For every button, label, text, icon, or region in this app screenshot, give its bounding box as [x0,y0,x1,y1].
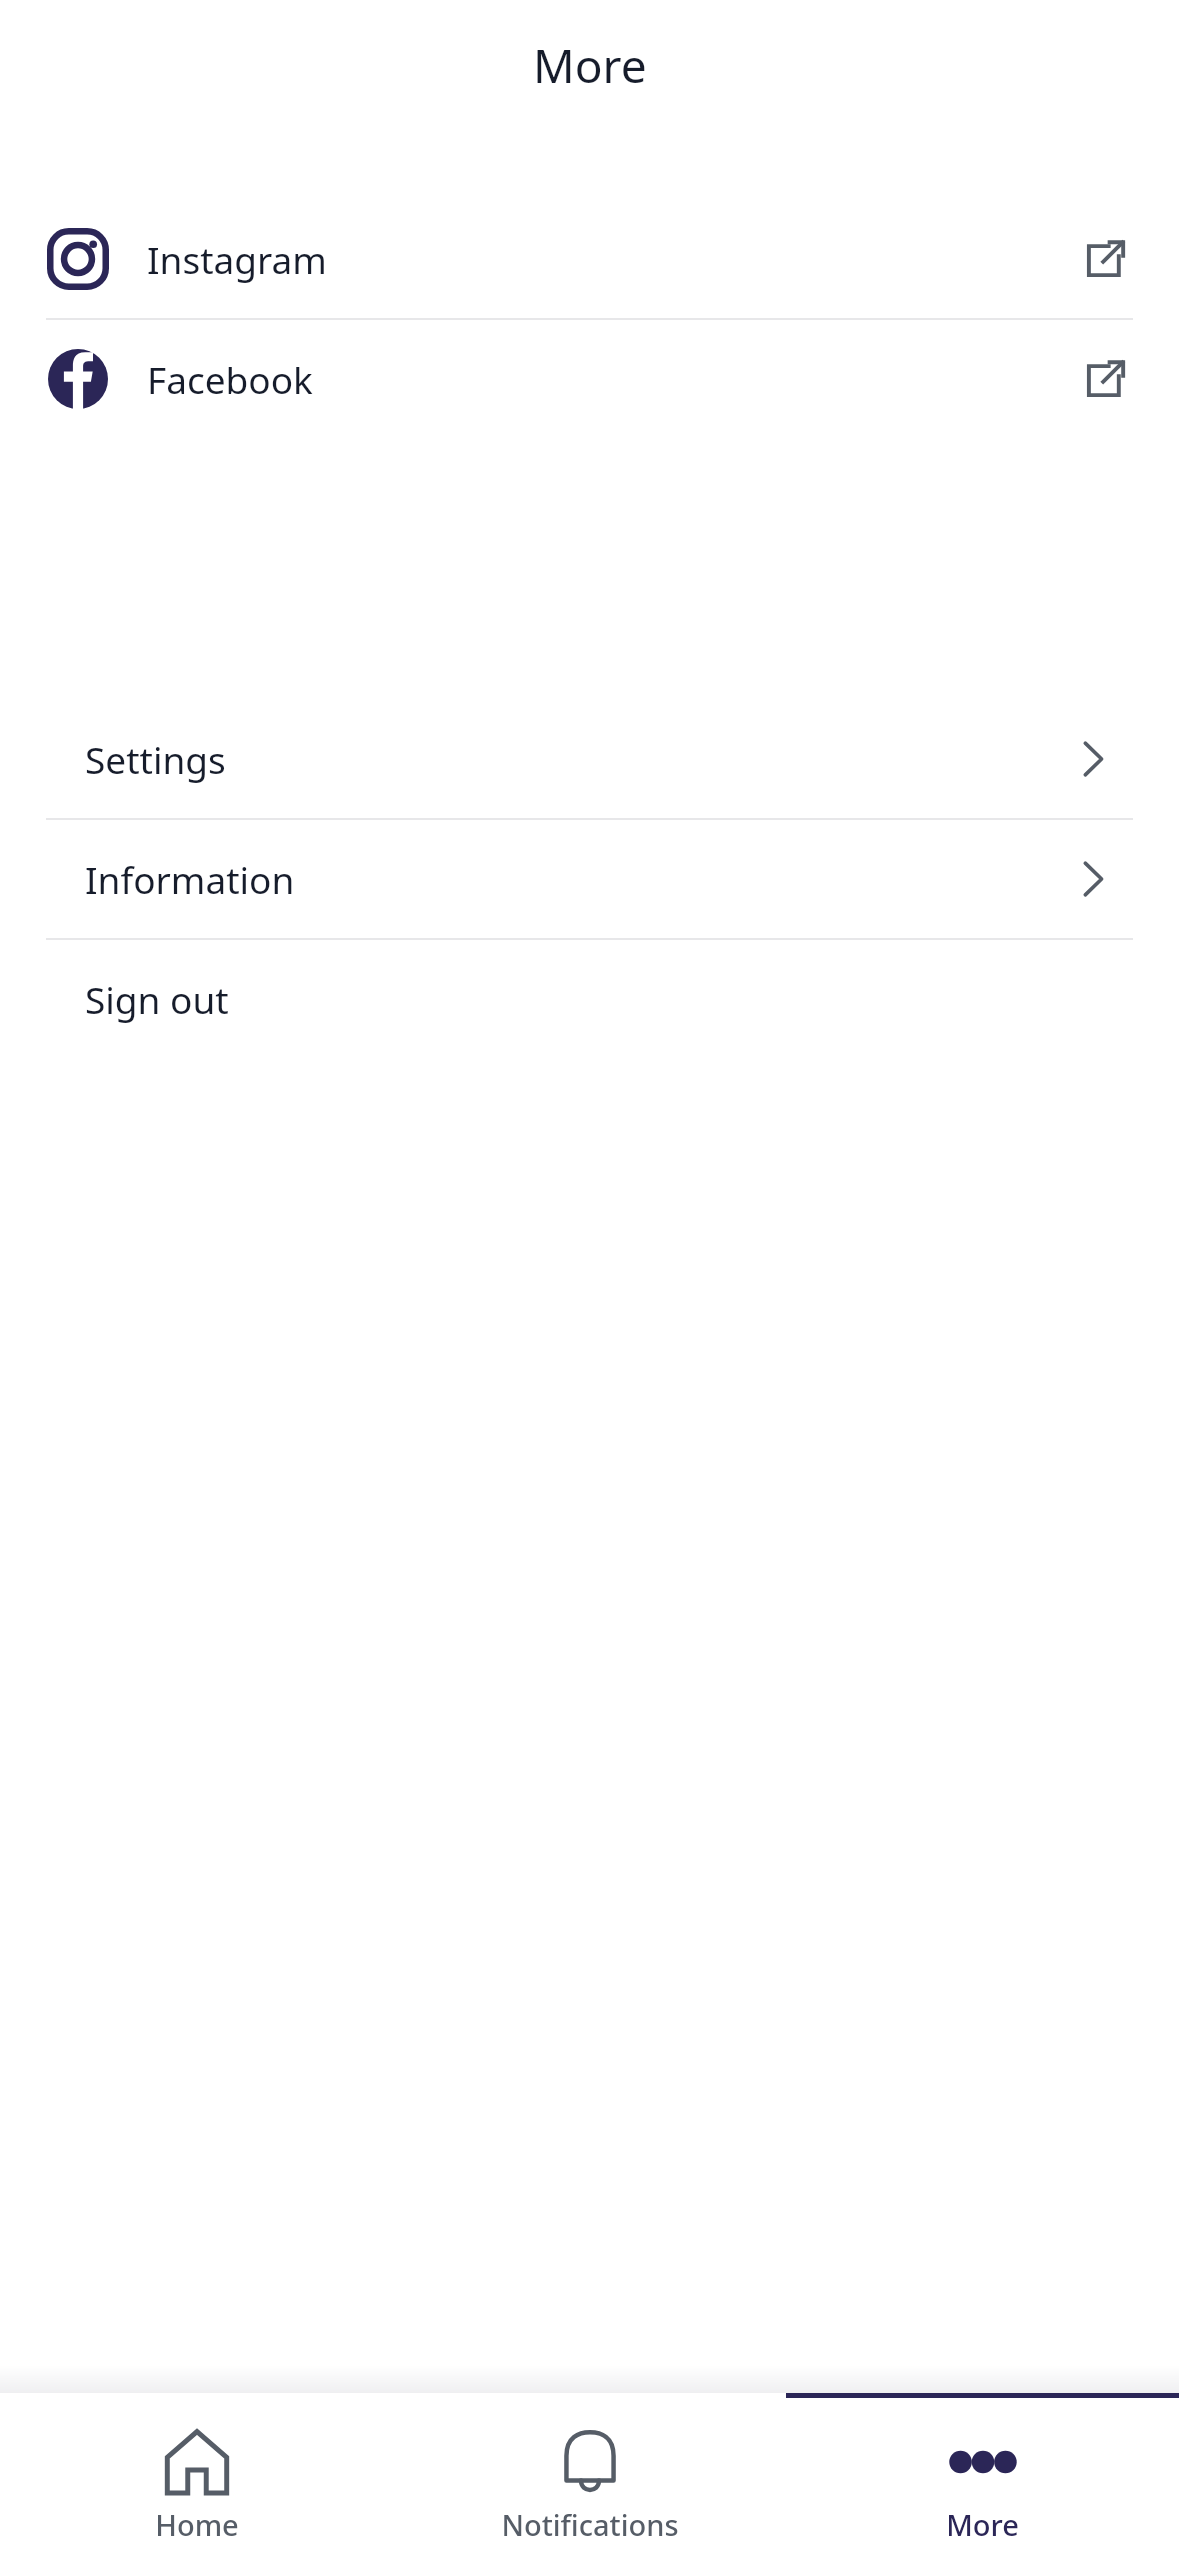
staticText: Home [155,2505,239,2544]
button[interactable]: Facebook [0,320,1179,438]
staticText: Information [85,854,295,904]
other: Open Facebook [1077,351,1133,407]
button[interactable]: Notifications [393,2393,786,2553]
staticText: Facebook [147,354,313,404]
staticText: Instagram [147,234,327,284]
other: Open Instagram [1077,231,1133,287]
button[interactable]: Settings [0,700,1179,818]
button[interactable]: Home [0,2393,393,2553]
staticText: More [533,34,647,97]
staticText: More [946,2505,1019,2544]
button[interactable]: Information [0,820,1179,938]
button[interactable]: Instagram [0,200,1179,318]
staticText: Notifications [501,2505,679,2544]
staticText: Sign out [85,974,229,1024]
button[interactable]: More [786,2393,1179,2553]
staticText: Settings [85,734,226,784]
button[interactable]: Sign out [0,940,1179,1058]
